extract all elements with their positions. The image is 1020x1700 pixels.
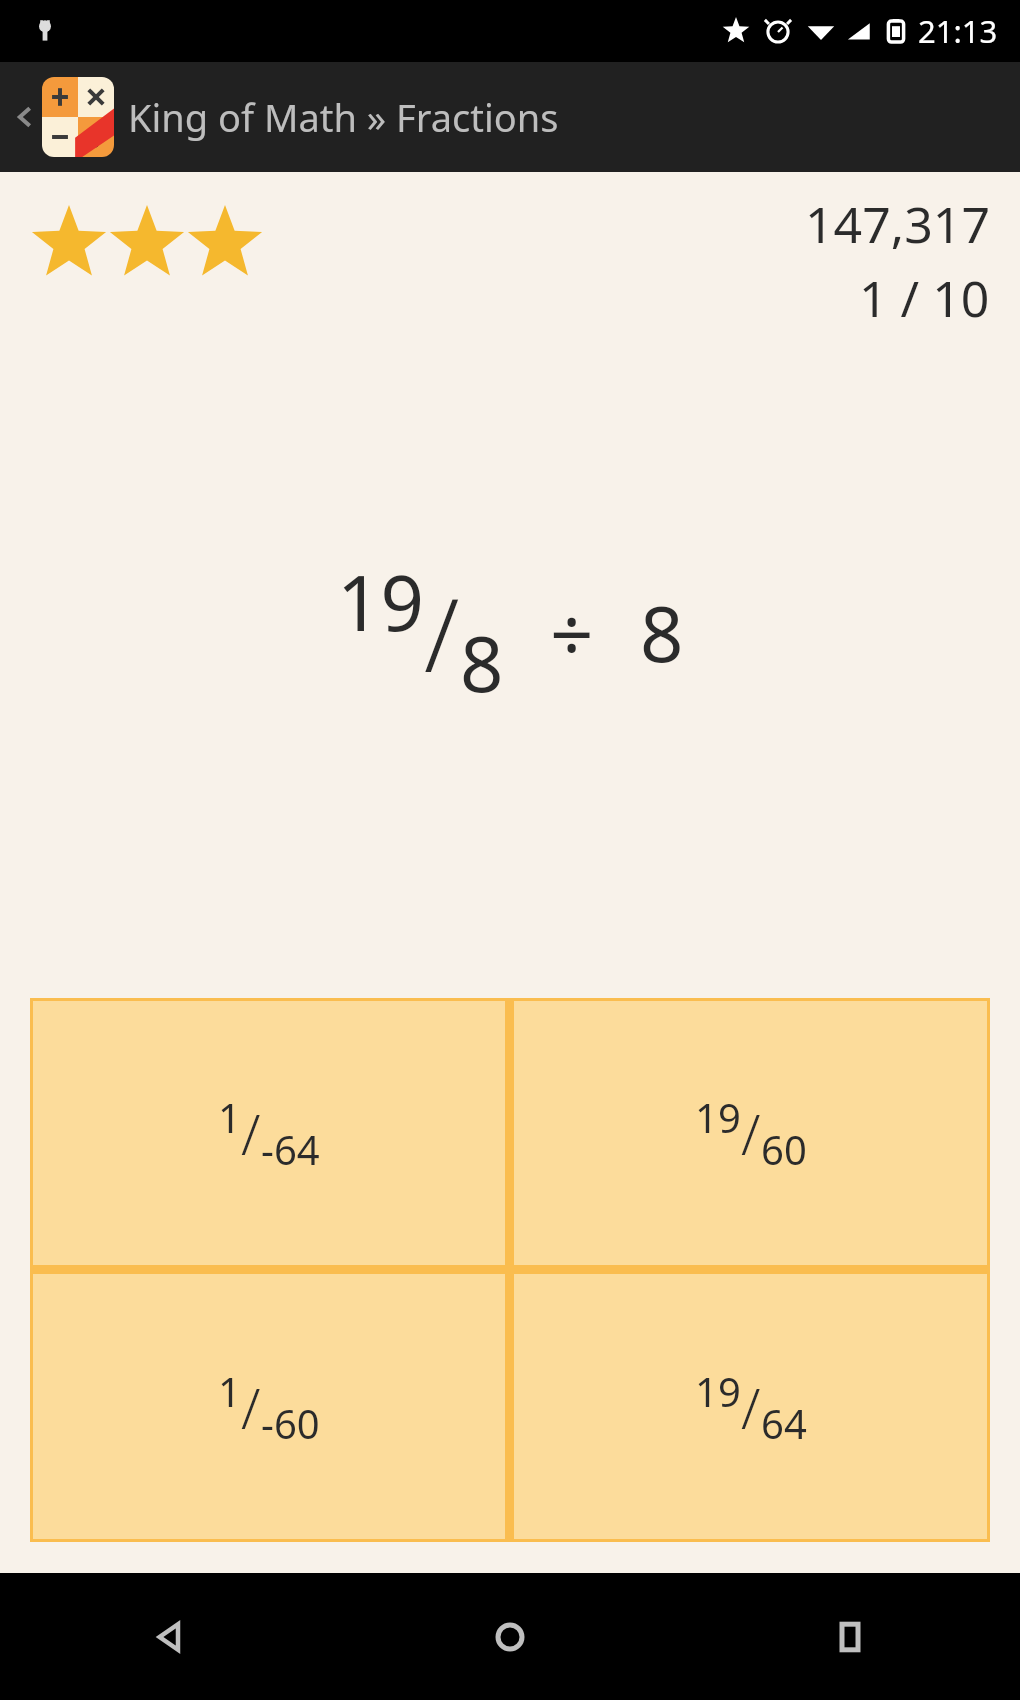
staticText: -64 — [261, 1122, 320, 1176]
staticText: / — [241, 1095, 261, 1171]
button[interactable]: 19 — [514, 1001, 987, 1265]
staticText: 1 — [218, 1364, 241, 1418]
staticText: 1 / 10 — [859, 264, 990, 332]
staticText: -60 — [261, 1396, 320, 1450]
staticText: / — [741, 1369, 761, 1445]
button[interactable]: Back — [0, 1573, 340, 1700]
staticText: King of Math » Fractions — [128, 91, 559, 143]
button[interactable]: Back — [0, 62, 1020, 172]
staticText: 19 — [695, 1090, 741, 1144]
button[interactable]: Back — [8, 82, 42, 152]
staticText: / — [741, 1095, 761, 1171]
staticText: 8 — [460, 611, 504, 715]
staticText: / — [424, 563, 460, 702]
staticText: 19 — [337, 550, 424, 654]
staticText: ÷ — [550, 581, 594, 685]
button[interactable]: 1 — [33, 1001, 505, 1265]
staticText: / — [241, 1369, 261, 1445]
staticText: 19 — [695, 1364, 741, 1418]
staticText: 21:13 — [918, 10, 998, 52]
staticText: 1 — [218, 1090, 241, 1144]
staticText: 8 — [640, 581, 684, 685]
button[interactable]: 1 — [33, 1274, 505, 1539]
button[interactable]: Home — [340, 1573, 680, 1700]
staticText: 60 — [761, 1122, 807, 1176]
staticText: 64 — [761, 1396, 807, 1450]
button[interactable]: Recent apps — [680, 1573, 1020, 1700]
button[interactable]: 19 — [514, 1274, 987, 1539]
staticText: 147,317 — [805, 190, 990, 258]
